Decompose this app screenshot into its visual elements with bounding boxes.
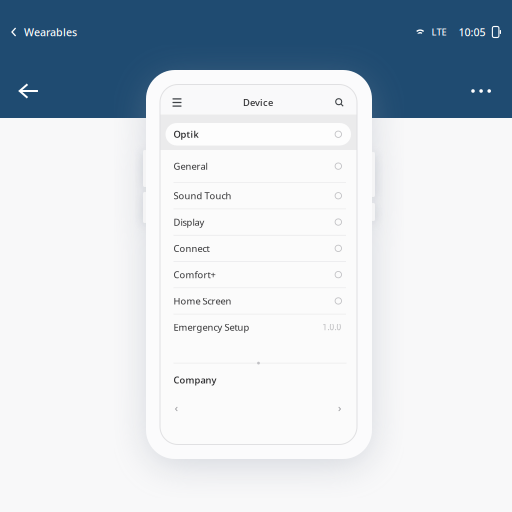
button[interactable]: Sound Touch (160, 183, 357, 209)
button[interactable]: Optik (165, 123, 351, 145)
button[interactable]: Connect (160, 235, 357, 262)
button[interactable]: Menu (172, 93, 185, 111)
button[interactable]: Previous (171, 403, 182, 414)
button[interactable]: Next (334, 403, 345, 414)
staticText: Display (173, 216, 204, 228)
staticText: 10:05 (458, 25, 485, 39)
button[interactable]: General (160, 150, 357, 183)
staticText: Connect (173, 242, 209, 255)
button[interactable]: Comfort+ (160, 262, 357, 288)
button[interactable]: Home Screen (160, 288, 357, 314)
staticText: Comfort+ (173, 268, 215, 281)
staticText: Home Screen (173, 295, 231, 307)
button[interactable]: Back (10, 72, 47, 109)
staticText: Optik (173, 128, 198, 140)
staticText: Company (173, 374, 216, 386)
button[interactable]: Emergency Setup (160, 314, 357, 340)
button[interactable]: More options (463, 81, 499, 101)
staticText: Wearables (24, 25, 77, 39)
staticText: Device (243, 96, 273, 109)
staticText: LTE (431, 26, 446, 38)
button[interactable]: Wearables (9, 21, 77, 43)
staticText: General (173, 160, 207, 172)
button[interactable]: Search (330, 93, 344, 111)
staticText: Sound Touch (173, 190, 231, 202)
button[interactable]: Display (160, 209, 357, 235)
staticText: Emergency Setup (173, 321, 249, 333)
staticText: 1.0.0 (322, 322, 341, 332)
